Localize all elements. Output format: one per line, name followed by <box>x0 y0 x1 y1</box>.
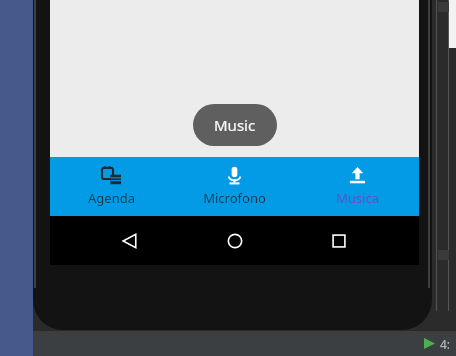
button[interactable]: Home <box>211 217 259 265</box>
button[interactable]: Microfono <box>173 157 296 216</box>
button[interactable]: Back <box>106 217 154 265</box>
staticText: Music <box>214 115 256 135</box>
staticText: Agenda <box>88 189 135 207</box>
staticText: Microfono <box>203 189 266 207</box>
button[interactable]: Music <box>193 104 277 146</box>
button[interactable]: Musica <box>296 157 419 216</box>
button[interactable]: Agenda <box>50 157 173 216</box>
button[interactable]: Recents <box>315 217 363 265</box>
staticText: Musica <box>336 189 379 207</box>
staticText: 4: <box>440 336 451 352</box>
